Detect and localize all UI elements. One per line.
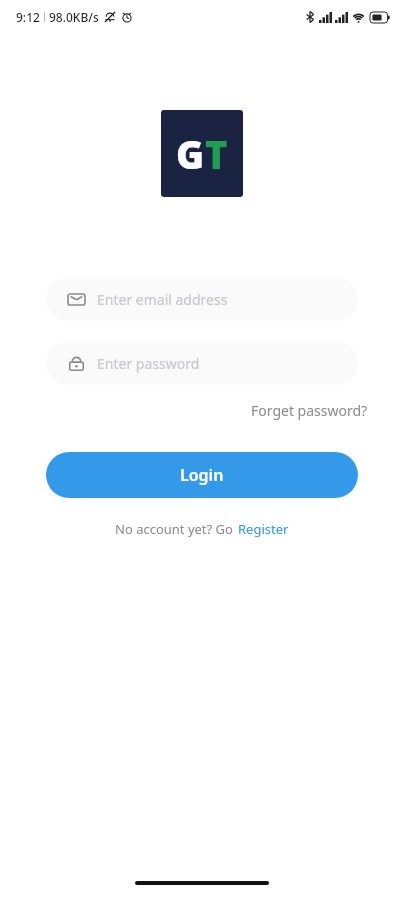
button[interactable]: Login — [46, 452, 358, 498]
staticText: T — [205, 128, 228, 180]
staticText: Forget password? — [251, 401, 368, 420]
button[interactable]: Register — [237, 518, 290, 540]
staticText: Enter email address — [97, 290, 228, 309]
staticText: Enter password — [97, 354, 200, 373]
staticText: 9:12 — [16, 9, 40, 25]
staticText: Register — [238, 520, 289, 538]
button[interactable]: Email address field — [46, 277, 358, 321]
staticText: Login — [180, 464, 224, 486]
button[interactable]: Password field — [46, 341, 358, 385]
staticText: G — [176, 128, 205, 180]
staticText: 98.0KB/s — [49, 9, 99, 25]
staticText: No account yet? Go — [115, 520, 237, 538]
button[interactable]: Forget password? — [249, 397, 370, 424]
